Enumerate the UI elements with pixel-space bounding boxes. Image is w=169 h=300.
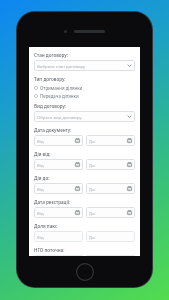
- staticText: Стан договору:: [34, 52, 68, 58]
- staticText: До: [89, 138, 127, 144]
- button[interactable]: Отримання ділянки: [34, 84, 135, 92]
- button[interactable]: До: [86, 207, 135, 218]
- other: Pick date: [127, 138, 132, 143]
- button[interactable]: До: [86, 183, 135, 194]
- staticText: Дата документу:: [34, 127, 72, 133]
- staticText: НГО поточна:: [34, 247, 65, 253]
- staticText: Від: [37, 234, 44, 240]
- staticText: До: [89, 162, 127, 168]
- button[interactable]: Від: [34, 183, 83, 194]
- button[interactable]: Від: [34, 207, 83, 218]
- staticText: До: [89, 186, 127, 192]
- staticText: Доля паю:: [34, 223, 58, 229]
- staticText: Від: [37, 186, 75, 192]
- other: Pick date: [75, 186, 80, 191]
- button[interactable]: Вибрати стан договору: [34, 60, 135, 71]
- staticText: Дія від:: [34, 151, 51, 157]
- button[interactable]: До: [86, 135, 135, 146]
- button[interactable]: Обрати вид договору: [34, 111, 135, 122]
- button[interactable]: Від: [34, 135, 83, 146]
- other: Pick date: [75, 138, 80, 143]
- button[interactable]: До: [86, 159, 135, 170]
- button[interactable]: Від: [34, 159, 83, 170]
- button[interactable]: Home: [76, 263, 94, 281]
- staticText: Отримання ділянки: [40, 85, 83, 91]
- staticText: Вид договору:: [34, 103, 67, 109]
- other: Pick date: [127, 186, 132, 191]
- other: Pick date: [75, 210, 80, 215]
- other: Pick date: [127, 162, 132, 167]
- staticText: Дата реєстрації:: [34, 199, 71, 205]
- button[interactable]: Від: [34, 231, 83, 242]
- staticText: Від: [37, 210, 75, 216]
- staticText: Від: [37, 162, 75, 168]
- staticText: До: [89, 234, 95, 240]
- staticText: Вибрати стан договору: [37, 63, 127, 69]
- staticText: До: [89, 210, 127, 216]
- button[interactable]: Передача ділянки: [34, 92, 135, 100]
- staticText: Від: [37, 138, 75, 144]
- staticText: Передача ділянки: [40, 93, 79, 99]
- other: Pick date: [75, 162, 80, 167]
- staticText: Дія до:: [34, 175, 50, 181]
- staticText: Обрати вид договору: [37, 114, 127, 120]
- other: Pick date: [127, 210, 132, 215]
- staticText: Тип договору:: [34, 76, 66, 82]
- button[interactable]: До: [86, 231, 135, 242]
